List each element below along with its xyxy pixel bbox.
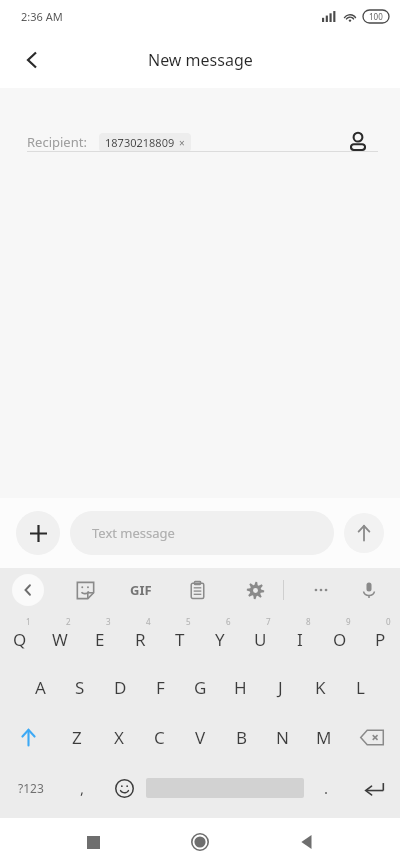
staticText: 2:36 AM bbox=[21, 9, 63, 24]
button[interactable]: J bbox=[260, 662, 300, 712]
staticText: 18730218809 bbox=[105, 135, 175, 150]
button[interactable]: 8 bbox=[280, 612, 320, 662]
staticText: 0 bbox=[386, 616, 391, 627]
staticText: U bbox=[254, 628, 267, 651]
button[interactable]: A bbox=[20, 662, 60, 712]
staticText: A bbox=[35, 676, 46, 699]
staticText: 3 bbox=[106, 616, 111, 627]
staticText: X bbox=[114, 726, 124, 749]
staticText: × bbox=[179, 136, 185, 150]
button[interactable]: . bbox=[304, 762, 348, 814]
button[interactable]: Add attachment bbox=[16, 511, 60, 555]
button[interactable]: Text message bbox=[70, 511, 334, 555]
button[interactable]: 3 bbox=[80, 612, 120, 662]
staticText: New message bbox=[148, 49, 253, 71]
button[interactable]: 7 bbox=[240, 612, 280, 662]
staticText: . bbox=[324, 778, 329, 798]
button[interactable]: 2 bbox=[40, 612, 80, 662]
staticText: R bbox=[135, 628, 146, 651]
staticText: G bbox=[194, 676, 207, 699]
button[interactable]: More options bbox=[304, 573, 338, 607]
staticText: H bbox=[234, 676, 247, 699]
staticText: GIF bbox=[130, 581, 152, 599]
button[interactable]: 0 bbox=[360, 612, 400, 662]
staticText: Text message bbox=[92, 524, 175, 542]
button[interactable]: Backspace bbox=[344, 712, 400, 762]
button[interactable]: B bbox=[221, 712, 262, 762]
staticText: 2 bbox=[66, 616, 71, 627]
button[interactable]: 5 bbox=[160, 612, 200, 662]
staticText: K bbox=[315, 676, 326, 699]
staticText: E bbox=[95, 628, 105, 651]
button[interactable]: GIF bbox=[122, 571, 160, 609]
button[interactable]: Stickers bbox=[68, 573, 102, 607]
button[interactable]: M bbox=[303, 712, 344, 762]
button[interactable]: C bbox=[139, 712, 180, 762]
staticText: , bbox=[80, 778, 85, 798]
button[interactable]: F bbox=[140, 662, 180, 712]
button[interactable]: X bbox=[98, 712, 139, 762]
button[interactable]: Clipboard bbox=[180, 573, 214, 607]
staticText: S bbox=[75, 676, 85, 699]
staticText: Z bbox=[72, 726, 82, 749]
button[interactable]: 18730218809 bbox=[99, 133, 191, 152]
staticText: ?123 bbox=[18, 780, 44, 796]
staticText: P bbox=[375, 628, 386, 651]
button[interactable]: , bbox=[62, 762, 102, 814]
staticText: D bbox=[114, 676, 127, 699]
button[interactable]: ?123 bbox=[0, 762, 62, 814]
button[interactable]: Voice input bbox=[352, 573, 386, 607]
button[interactable]: Send bbox=[344, 513, 384, 553]
staticText: J bbox=[278, 676, 283, 699]
staticText: I bbox=[297, 628, 303, 651]
staticText: N bbox=[276, 726, 289, 749]
button[interactable]: Emoji bbox=[102, 762, 146, 814]
button[interactable]: 9 bbox=[320, 612, 360, 662]
staticText: W bbox=[52, 628, 68, 651]
staticText: 8 bbox=[306, 616, 311, 627]
staticText: 6 bbox=[226, 616, 231, 627]
staticText: 100 bbox=[369, 11, 383, 22]
button[interactable]: Back bbox=[8, 36, 56, 84]
staticText: 9 bbox=[346, 616, 351, 627]
staticText: 7 bbox=[266, 616, 271, 627]
staticText: O bbox=[333, 628, 347, 651]
staticText: L bbox=[356, 676, 365, 699]
button[interactable]: Shift bbox=[0, 712, 56, 762]
button[interactable]: Close toolbar bbox=[12, 574, 44, 606]
button[interactable]: S bbox=[60, 662, 100, 712]
button[interactable]: Choose contact bbox=[338, 122, 378, 162]
button[interactable]: G bbox=[180, 662, 220, 712]
button[interactable]: Enter bbox=[348, 762, 400, 814]
staticText: T bbox=[175, 628, 185, 651]
button[interactable]: Home bbox=[176, 818, 224, 866]
button[interactable]: Back bbox=[283, 818, 331, 866]
staticText: V bbox=[195, 726, 206, 749]
button[interactable]: V bbox=[180, 712, 221, 762]
button[interactable]: N bbox=[262, 712, 303, 762]
button[interactable]: H bbox=[220, 662, 260, 712]
staticText: Y bbox=[215, 628, 225, 651]
staticText: 4 bbox=[146, 616, 151, 627]
staticText: Recipient: bbox=[27, 133, 87, 151]
button[interactable]: 6 bbox=[200, 612, 240, 662]
staticText: B bbox=[236, 726, 248, 749]
button[interactable]: 4 bbox=[120, 612, 160, 662]
button[interactable]: Z bbox=[56, 712, 98, 762]
staticText: C bbox=[154, 726, 165, 749]
staticText: F bbox=[156, 676, 165, 699]
staticText: Q bbox=[13, 628, 27, 651]
staticText: M bbox=[316, 726, 332, 749]
button[interactable]: Settings bbox=[238, 573, 272, 607]
staticText: 5 bbox=[186, 616, 191, 627]
button[interactable]: L bbox=[340, 662, 380, 712]
staticText: 1 bbox=[26, 616, 31, 627]
button[interactable]: K bbox=[300, 662, 340, 712]
button[interactable]: 1 bbox=[0, 612, 40, 662]
button[interactable]: Recents bbox=[69, 818, 117, 866]
button[interactable]: D bbox=[100, 662, 140, 712]
